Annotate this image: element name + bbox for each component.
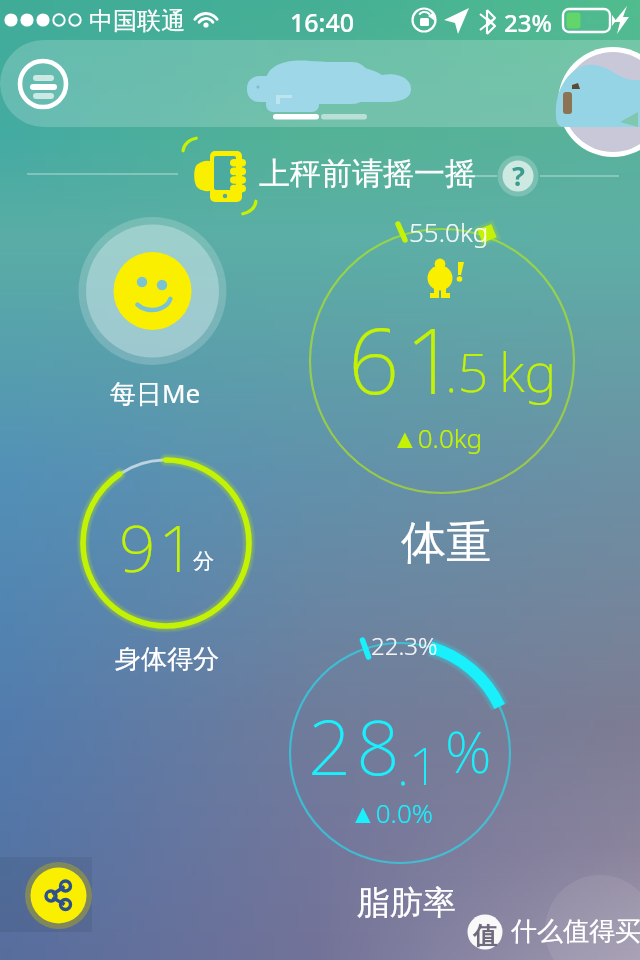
- staticText: kg: [499, 334, 557, 408]
- staticText: 61: [348, 298, 463, 421]
- staticText: 每日Me: [110, 375, 201, 411]
- staticText: 28: [308, 694, 405, 798]
- staticText: %: [445, 711, 492, 790]
- button[interactable]: Help: [498, 156, 539, 197]
- staticText: .5: [445, 334, 489, 408]
- staticText: 22.3%: [371, 629, 438, 662]
- staticText: 分: [193, 548, 214, 574]
- button[interactable]: Menu: [19, 60, 67, 108]
- button[interactable]: Share: [25, 862, 92, 929]
- staticText: 脂肪率: [357, 882, 456, 924]
- staticText: 55.0kg: [409, 214, 489, 249]
- staticText: 16:40: [290, 5, 355, 39]
- staticText: 23%: [504, 6, 552, 39]
- staticText: 上秤前请摇一摇: [259, 154, 476, 193]
- staticText: 91: [119, 504, 198, 591]
- staticText: 值: [473, 921, 497, 951]
- staticText: 身体得分: [115, 643, 219, 676]
- button[interactable]: [78, 217, 228, 367]
- staticText: ▲0.0kg: [392, 420, 483, 455]
- staticText: .1: [397, 729, 439, 800]
- staticText: ?: [512, 157, 525, 194]
- staticText: 中国联通: [89, 6, 185, 36]
- staticText: ▲0.0%: [350, 795, 433, 830]
- staticText: 体重: [401, 515, 491, 572]
- staticText: 什么值得买: [511, 915, 640, 948]
